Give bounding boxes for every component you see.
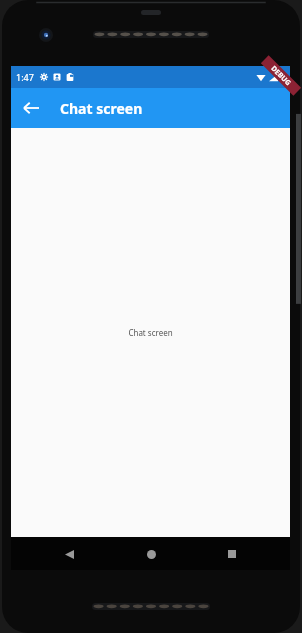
staticText: DEBUG	[269, 64, 293, 88]
button[interactable]: Home	[139, 542, 163, 566]
staticText: Chat screen	[60, 99, 143, 118]
staticText: 1:47	[16, 71, 34, 83]
staticText: Chat screen	[128, 327, 173, 338]
button[interactable]: Recent apps	[220, 542, 244, 566]
button[interactable]: Back	[57, 542, 81, 566]
button[interactable]: Back	[17, 94, 45, 122]
